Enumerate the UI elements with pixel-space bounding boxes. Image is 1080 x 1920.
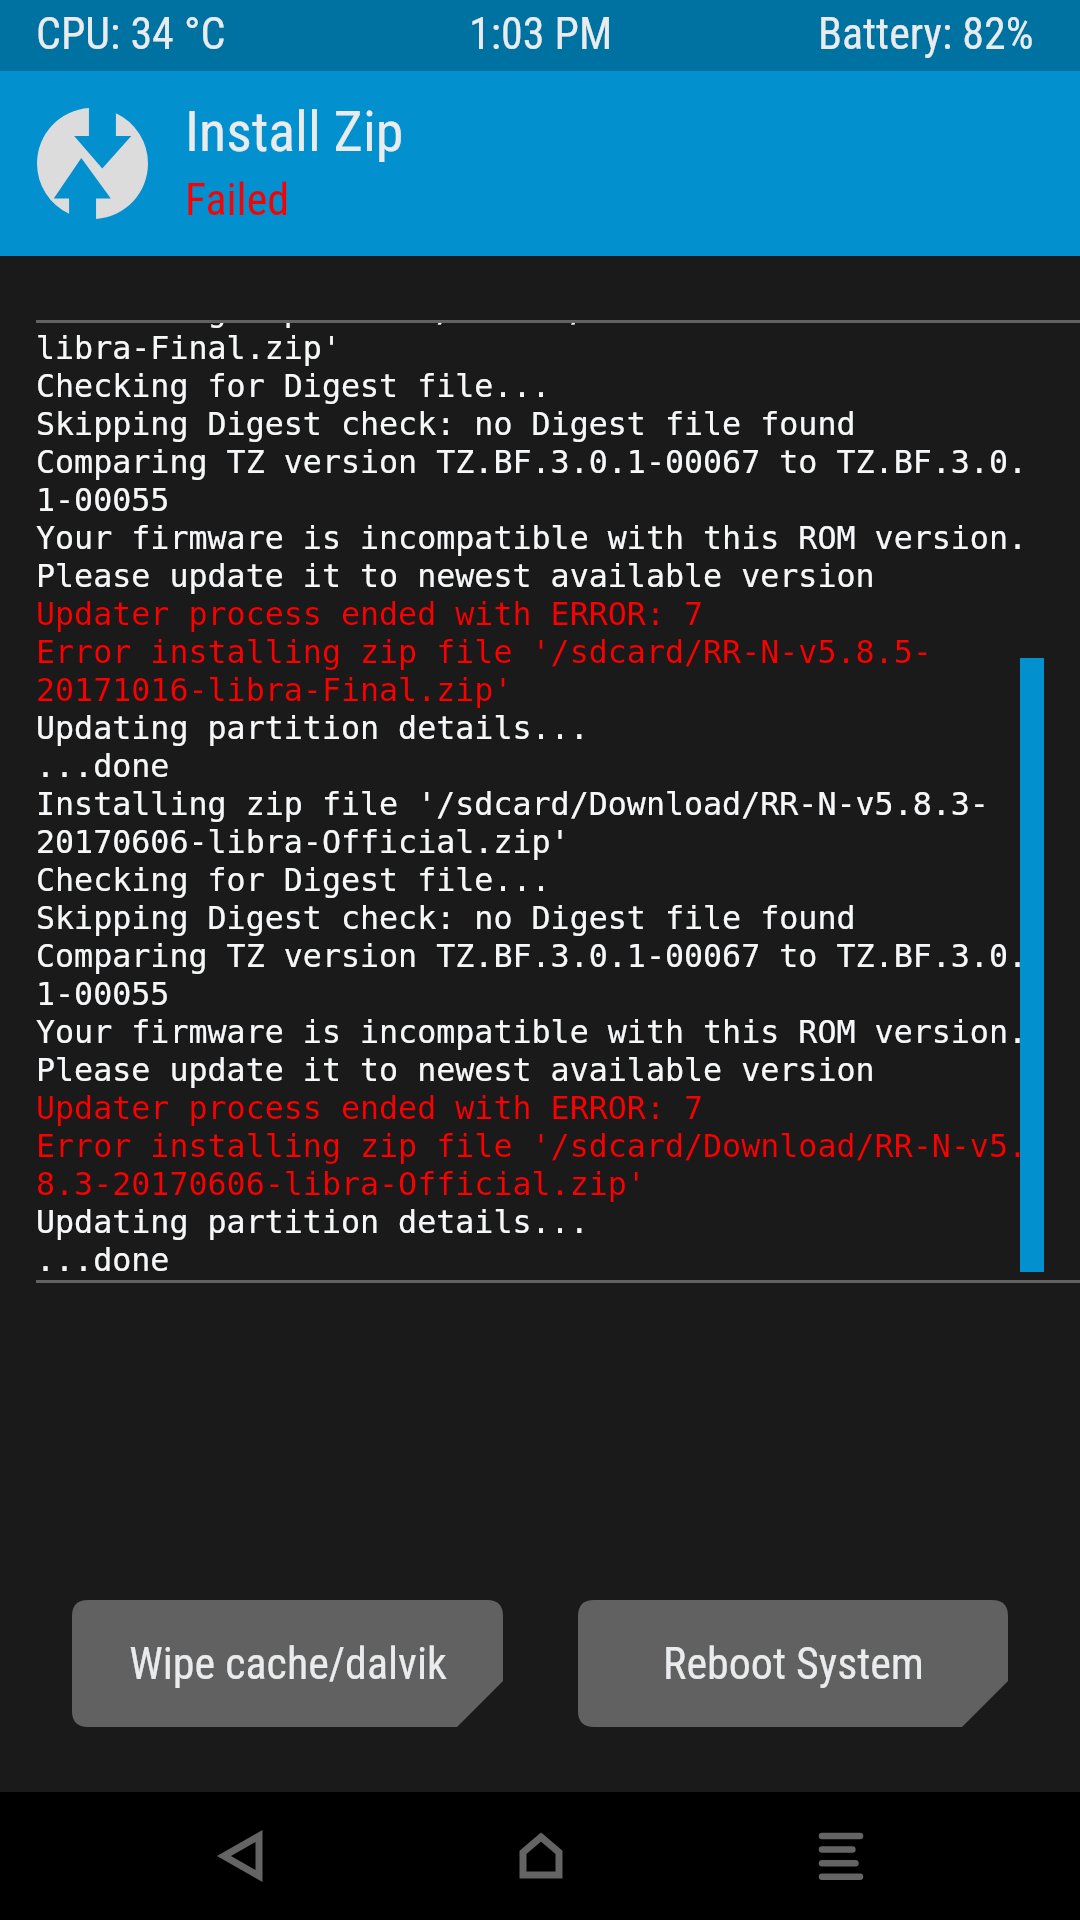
staticText: ...done	[36, 748, 170, 785]
staticText: Comparing TZ version TZ.BF.3.0.1-00067 t…	[36, 938, 1028, 975]
staticText: Error installing zip file '/sdcard/Downl…	[36, 1128, 1028, 1165]
staticText: Skipping Digest check: no Digest file fo…	[36, 900, 856, 937]
staticText: Comparing TZ version TZ.BF.3.0.1-00067 t…	[36, 444, 1028, 481]
button[interactable]: Home	[481, 1792, 601, 1920]
staticText: Please update it to newest available ver…	[36, 1052, 875, 1089]
button[interactable]: Menu	[781, 1792, 901, 1920]
staticText: Your firmware is incompatible with this …	[36, 520, 1028, 557]
staticText: ...done	[36, 1242, 170, 1279]
staticText: Error installing zip file '/sdcard/RR-N-…	[36, 634, 932, 671]
staticText: Updater process ended with ERROR: 7	[36, 596, 704, 633]
staticText: 20171016-libra-Final.zip'	[36, 672, 513, 709]
staticText: Updating partition details...	[36, 710, 589, 747]
button[interactable]: Wipe cache/dalvik	[72, 1600, 503, 1727]
staticText: Installing zip file '/sdcard/RR-N-v5.8.5…	[36, 321, 989, 329]
staticText: Failed	[185, 174, 290, 226]
staticText: Install Zip	[185, 99, 404, 165]
staticText: 1:03 PM	[469, 8, 613, 60]
staticText: Updater process ended with ERROR: 7	[36, 1090, 704, 1127]
staticText: 20170606-libra-Official.zip'	[36, 824, 570, 861]
staticText: Wipe cache/dalvik	[129, 1638, 447, 1690]
staticText: Please update it to newest available ver…	[36, 558, 875, 595]
staticText: Updating partition details...	[36, 1204, 589, 1241]
staticText: Skipping Digest check: no Digest file fo…	[36, 406, 856, 443]
staticText: 8.3-20170606-libra-Official.zip'	[36, 1166, 646, 1203]
staticText: libra-Final.zip'	[36, 330, 341, 367]
staticText: 1-00055	[36, 976, 170, 1013]
staticText: Reboot System	[663, 1638, 924, 1690]
staticText: Your firmware is incompatible with this …	[36, 1014, 1028, 1051]
button[interactable]: Reboot System	[578, 1600, 1008, 1727]
staticText: Checking for Digest file...	[36, 368, 551, 405]
button[interactable]: Back	[181, 1792, 301, 1920]
staticText: 1-00055	[36, 482, 170, 519]
staticText: CPU: 34 °C	[36, 8, 226, 60]
staticText: Checking for Digest file...	[36, 862, 551, 899]
staticText: Battery: 82%	[818, 8, 1034, 60]
staticText: Installing zip file '/sdcard/Download/RR…	[36, 786, 989, 823]
